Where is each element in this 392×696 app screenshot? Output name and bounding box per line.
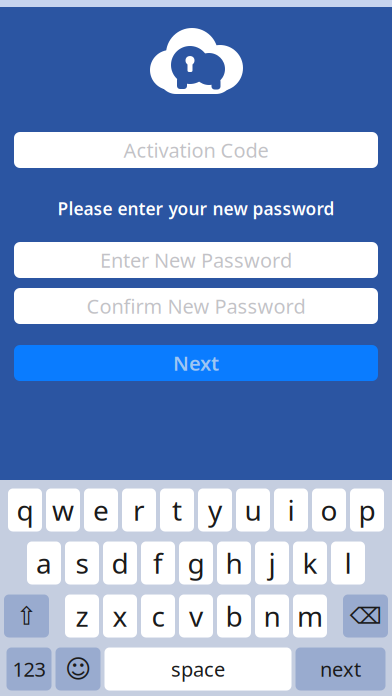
staticText: next (320, 656, 361, 682)
button[interactable]: o (312, 488, 346, 531)
staticText: s (75, 544, 88, 582)
staticText: k (302, 544, 317, 582)
button[interactable]: Confirm New Password (14, 288, 378, 324)
button[interactable]: p (350, 488, 384, 531)
button[interactable]: i (274, 488, 308, 531)
button[interactable]: y (198, 488, 232, 531)
button[interactable]: u (236, 488, 270, 531)
staticText: m (297, 597, 323, 635)
staticText: Enter New Password (100, 247, 292, 273)
button[interactable]: z (65, 594, 99, 637)
staticText: h (225, 544, 242, 582)
staticText: 123 (12, 656, 45, 682)
staticText: f (153, 544, 163, 582)
staticText: ☺ (65, 655, 91, 683)
button[interactable]: r (122, 488, 156, 531)
button[interactable]: Activation Code (14, 132, 378, 168)
button[interactable]: a (27, 541, 61, 584)
staticText: n (263, 597, 280, 635)
button[interactable]: v (179, 594, 213, 637)
staticText: l (344, 544, 351, 582)
staticText: c (151, 597, 164, 635)
staticText: d (111, 544, 128, 582)
button[interactable]: t (160, 488, 194, 531)
button[interactable]: Next (14, 345, 378, 381)
staticText: g (187, 544, 204, 582)
button[interactable]: space (104, 647, 291, 690)
staticText: z (75, 597, 88, 635)
staticText: p (358, 491, 375, 529)
button[interactable]: g (179, 541, 213, 584)
staticText: x (112, 597, 127, 635)
staticText: t (172, 491, 182, 529)
staticText: e (93, 491, 109, 529)
staticText: u (244, 491, 261, 529)
button[interactable]: c (141, 594, 175, 637)
staticText: o (320, 491, 337, 529)
staticText: b (225, 597, 242, 635)
staticText: w (52, 491, 74, 529)
button[interactable]: w (46, 488, 80, 531)
button[interactable]: e (84, 488, 118, 531)
staticText: j (268, 544, 275, 582)
button[interactable]: l (331, 541, 365, 584)
button[interactable]: k (293, 541, 327, 584)
button[interactable]: h (217, 541, 251, 584)
button[interactable]: b (217, 594, 251, 637)
staticText: space (171, 656, 225, 682)
button[interactable]: s (65, 541, 99, 584)
staticText: i (287, 491, 294, 529)
button[interactable]: next (295, 647, 385, 690)
staticText: Activation Code (123, 137, 268, 163)
button[interactable]: Delete (343, 594, 388, 637)
button[interactable]: Enter New Password (14, 242, 378, 278)
button[interactable]: m (293, 594, 327, 637)
button[interactable]: d (103, 541, 137, 584)
staticText: ⇧ (16, 602, 37, 630)
staticText: Confirm New Password (86, 293, 305, 319)
staticText: q (16, 491, 33, 529)
button[interactable]: Shift (4, 594, 49, 637)
button[interactable]: j (255, 541, 289, 584)
button[interactable]: Emoji (55, 647, 100, 690)
staticText: r (133, 491, 145, 529)
staticText: Please enter your new password (57, 197, 334, 220)
staticText: v (189, 597, 203, 635)
staticText: ⌫ (349, 603, 381, 629)
button[interactable]: 123 (6, 647, 51, 690)
staticText: y (208, 491, 222, 529)
button[interactable]: q (8, 488, 42, 531)
button[interactable]: n (255, 594, 289, 637)
button[interactable]: x (103, 594, 137, 637)
staticText: a (36, 544, 52, 582)
staticText: Next (173, 350, 219, 376)
button[interactable]: f (141, 541, 175, 584)
